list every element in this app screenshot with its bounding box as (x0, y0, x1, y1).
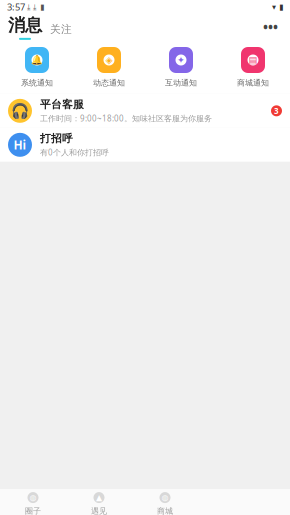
staticText: Hi (13, 137, 26, 153)
staticText: 工作时间：9:00~18:00。知味社区客服为你服务 (40, 113, 212, 124)
button[interactable]: ✦ (145, 46, 217, 88)
staticText: 系统通知 (21, 78, 53, 88)
button[interactable]: ◍ (132, 492, 198, 515)
button[interactable]: 消息 (8, 15, 42, 40)
button[interactable]: Hi (0, 128, 290, 162)
staticText: 平台客服 (40, 98, 84, 111)
button[interactable]: ◍ (0, 492, 66, 515)
staticText: 关注 (50, 23, 72, 36)
button[interactable]: 关注 (50, 23, 72, 40)
staticText: 遇见 (91, 506, 107, 515)
staticText: 有0个人和你打招呼 (40, 147, 109, 158)
staticText: 商城 (157, 506, 173, 515)
staticText: 圈子 (25, 506, 41, 515)
staticText: ▤ (248, 55, 257, 65)
button[interactable]: More options (259, 14, 282, 40)
button[interactable]: ▲ (66, 492, 132, 515)
staticText: 打招呼 (40, 132, 73, 145)
staticText: ✦ (177, 55, 185, 65)
button[interactable]: ▤ (217, 46, 289, 88)
staticText: ◍ (161, 493, 168, 502)
staticText: 互动通知 (165, 78, 197, 88)
staticText: 🎧 (11, 102, 29, 119)
staticText: ••• (263, 18, 278, 36)
button[interactable]: 🎧 (0, 94, 290, 128)
staticText: ⤓ ⤓ ▮ (25, 2, 44, 12)
staticText: ▾ ▮ (272, 2, 283, 12)
staticText: 消息 (8, 15, 42, 36)
staticText: 3:57 (7, 1, 25, 13)
staticText: 🔔 (31, 55, 43, 65)
staticText: 动态通知 (93, 78, 125, 88)
button[interactable]: ◈ (73, 46, 145, 88)
staticText: 商城通知 (237, 78, 269, 88)
staticText: ▲ (96, 493, 102, 502)
staticText: 3 (274, 105, 279, 116)
button[interactable]: 🔔 (1, 46, 73, 88)
staticText: ◈ (105, 55, 112, 65)
staticText: ◍ (29, 493, 36, 502)
